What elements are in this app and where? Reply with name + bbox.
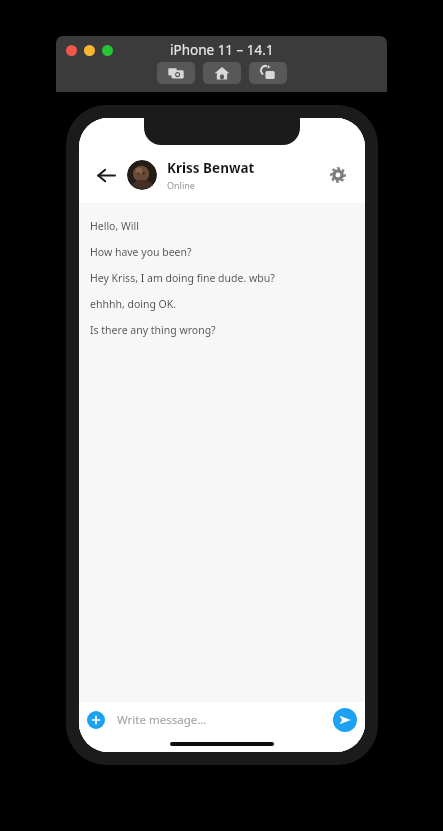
button[interactable]: Screenshot	[157, 62, 195, 84]
staticText: How have you been?	[90, 245, 192, 259]
staticText: Hey Kriss, I am doing fine dude. wbu?	[90, 271, 275, 285]
staticText: Hello, Will	[90, 219, 139, 233]
button[interactable]: Back	[91, 160, 121, 190]
staticText: Is there any thing wrong?	[90, 323, 216, 337]
button[interactable]: Profile photo	[127, 160, 157, 190]
button[interactable]: Home	[203, 62, 241, 84]
button[interactable]: Hey Kriss, I am doing fine dude. wbu?	[90, 271, 354, 285]
button[interactable]: How have you been?	[90, 245, 354, 259]
button[interactable]: Settings	[323, 160, 353, 190]
staticText: Write message...	[117, 712, 207, 728]
button[interactable]: Add attachment	[87, 711, 105, 729]
button[interactable]: Hello, Will	[90, 219, 354, 233]
staticText: ehhhh, doing OK.	[90, 297, 177, 311]
button[interactable]: ehhhh, doing OK.	[90, 297, 354, 311]
staticText: Online	[167, 179, 195, 191]
button[interactable]: Write message...	[117, 712, 325, 728]
button[interactable]: Maximize	[102, 45, 113, 56]
staticText: Kriss Benwat	[167, 159, 255, 177]
button[interactable]: Is there any thing wrong?	[90, 323, 354, 337]
button[interactable]: Rotate	[249, 62, 287, 84]
button[interactable]: Close	[66, 45, 77, 56]
staticText: iPhone 11 – 14.1	[170, 41, 274, 59]
button[interactable]: Send	[333, 708, 357, 732]
button[interactable]: Kriss Benwat	[167, 159, 323, 191]
button[interactable]: Minimize	[84, 45, 95, 56]
